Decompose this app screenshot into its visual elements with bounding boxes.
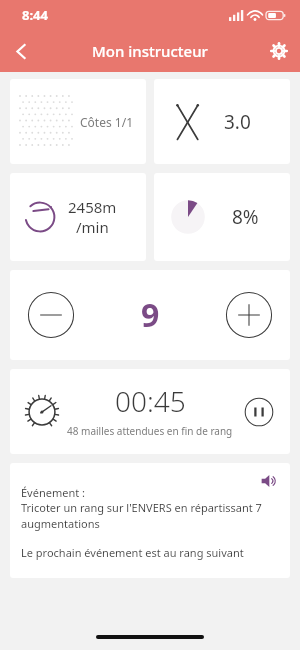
button[interactable]: 3.0 xyxy=(154,79,290,164)
staticText: 48 mailles attendues en fin de rang xyxy=(67,424,233,438)
staticText: Événement : xyxy=(21,485,85,500)
button[interactable]: 2458m xyxy=(10,173,146,261)
button[interactable]: Back xyxy=(0,30,42,72)
staticText: 00:45 xyxy=(115,382,186,420)
staticText: Tricoter un rang sur l'ENVERS en réparti… xyxy=(21,500,272,532)
staticText: 8:44 xyxy=(22,6,48,24)
staticText: Mon instructeur xyxy=(92,41,208,61)
staticText: Côtes 1/1 xyxy=(80,114,134,130)
button[interactable]: Speed xyxy=(10,369,290,454)
staticText: 2458m xyxy=(68,197,117,217)
staticText: 9 xyxy=(141,293,160,337)
button[interactable]: Speed xyxy=(22,392,62,432)
staticText: 8% xyxy=(232,204,259,230)
button[interactable]: Increase xyxy=(224,290,274,340)
button[interactable]: Settings xyxy=(258,30,300,72)
button[interactable]: Decrease xyxy=(26,290,76,340)
button[interactable]: 8% xyxy=(154,173,290,261)
button[interactable]: Pause xyxy=(242,395,276,429)
button[interactable]: Read aloud xyxy=(256,468,282,494)
button[interactable]: Read aloud xyxy=(10,463,290,578)
button[interactable]: Côtes 1/1 xyxy=(10,79,146,164)
button[interactable]: Decrease xyxy=(10,270,290,360)
staticText: Le prochain événement est au rang suivan… xyxy=(21,545,244,560)
staticText: /min xyxy=(76,217,109,237)
staticText: 3.0 xyxy=(224,109,251,135)
